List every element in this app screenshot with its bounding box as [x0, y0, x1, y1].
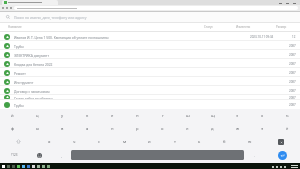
- staticText: р: [136, 126, 139, 132]
- button[interactable]: ?123: [0, 148, 28, 162]
- button[interactable]: л: [175, 122, 200, 135]
- staticText: ?123: [11, 153, 18, 157]
- staticText: Договор с заказчиком: [14, 89, 50, 93]
- button[interactable]: б: [212, 135, 237, 148]
- staticText: Размер: [276, 25, 287, 29]
- button[interactable]: м: [112, 135, 137, 148]
- button[interactable]: в: [50, 122, 75, 135]
- button[interactable]: з: [225, 110, 250, 122]
- button[interactable]: р: [125, 122, 150, 135]
- staticText: е: [111, 113, 114, 119]
- button[interactable]: ю: [237, 135, 262, 148]
- button[interactable]: н: [125, 110, 150, 122]
- staticText: Смета работ по объекту: [14, 96, 53, 100]
- button[interactable]: щ: [200, 110, 225, 122]
- button[interactable]: п: [100, 122, 125, 135]
- button[interactable]: ь: [187, 135, 212, 148]
- staticText: ь: [198, 139, 201, 145]
- button[interactable]: о: [150, 122, 175, 135]
- staticText: п: [111, 126, 114, 132]
- staticText: с: [98, 139, 101, 145]
- staticText: я: [48, 139, 51, 145]
- button[interactable]: Space: [71, 150, 244, 160]
- staticText: ъ: [286, 113, 289, 119]
- button[interactable]: Search: [0, 12, 300, 22]
- staticText: Иванов И. Т. Цена 1 500. Квитанция об уп…: [14, 35, 109, 39]
- staticText: 2023-10-11 09:34: [250, 35, 274, 39]
- other: Search: [6, 15, 10, 19]
- button[interactable]: Смета работ по объекту: [0, 95, 300, 100]
- button[interactable]: Иванов И. Т. Цена 1 500. Квитанция об уп…: [0, 32, 300, 41]
- button[interactable]: ф: [0, 122, 25, 135]
- button[interactable]: т: [162, 135, 187, 148]
- button[interactable]: ъ: [275, 110, 300, 122]
- staticText: Ремонт: [14, 71, 26, 75]
- staticText: 2087: [289, 96, 296, 100]
- button[interactable]: к: [75, 110, 100, 122]
- button[interactable]: Enter: [278, 151, 287, 160]
- button[interactable]: [2, 0, 58, 5]
- button[interactable]: с: [87, 135, 112, 148]
- staticText: л: [186, 126, 189, 132]
- staticText: ш: [186, 113, 190, 119]
- button[interactable]: Договор с заказчиком: [0, 86, 300, 95]
- button[interactable]: г: [150, 110, 175, 122]
- button[interactable]: Shift: [0, 135, 37, 148]
- button[interactable]: ч: [62, 135, 87, 148]
- button[interactable]: Инструмент: [0, 77, 300, 86]
- button[interactable]: Emoji: [28, 148, 51, 162]
- button[interactable]: Трубы: [0, 41, 300, 50]
- staticText: ф: [11, 126, 15, 132]
- button[interactable]: ш: [175, 110, 200, 122]
- button[interactable]: Ремонт: [0, 68, 300, 77]
- staticText: ,: [61, 153, 62, 158]
- staticText: м: [123, 139, 127, 145]
- button[interactable]: ж: [225, 122, 250, 135]
- staticText: ё: [286, 126, 289, 132]
- button[interactable]: й: [0, 110, 25, 122]
- staticText: т: [174, 139, 176, 145]
- button[interactable]: ц: [25, 110, 50, 122]
- staticText: 2087: [289, 80, 296, 84]
- staticText: Трубы: [14, 44, 24, 48]
- staticText: б: [223, 139, 226, 145]
- button[interactable]: е: [100, 110, 125, 122]
- button[interactable]: э: [250, 122, 275, 135]
- staticText: 2087: [289, 103, 296, 107]
- button[interactable]: [14, 6, 298, 10]
- staticText: Поиск по имени, дате, телефону или адрес…: [14, 15, 87, 20]
- button[interactable]: д: [200, 122, 225, 135]
- staticText: ч: [73, 139, 76, 145]
- button[interactable]: х: [250, 110, 275, 122]
- button[interactable]: ы: [25, 122, 50, 135]
- button[interactable]: ЭЛЕКТРИКА документ: [0, 50, 300, 59]
- staticText: ы: [36, 126, 40, 132]
- staticText: Кладка для бетона 2022: [14, 62, 53, 66]
- button[interactable]: Backspace: [262, 135, 300, 148]
- button[interactable]: и: [137, 135, 162, 148]
- button[interactable]: ё: [275, 122, 300, 135]
- staticText: Название: [8, 25, 22, 29]
- button[interactable]: я: [37, 135, 62, 148]
- button[interactable]: у: [50, 110, 75, 122]
- button[interactable]: а: [75, 122, 100, 135]
- button[interactable]: Кладка для бетона 2022: [0, 59, 300, 68]
